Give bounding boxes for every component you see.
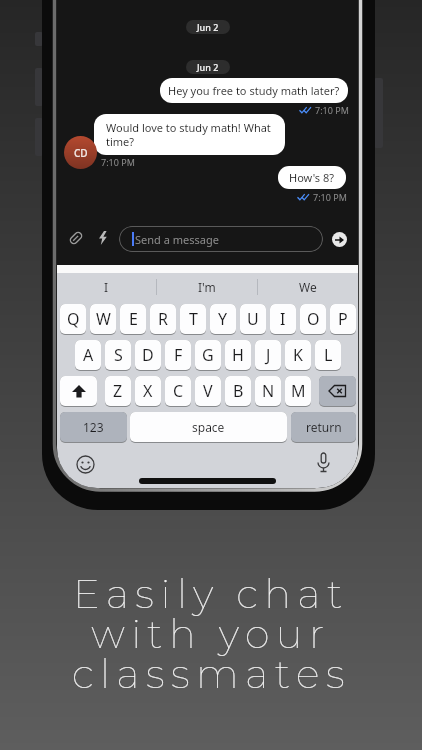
button[interactable]: O <box>300 304 326 334</box>
staticText: 7:10 PM <box>101 156 135 168</box>
staticText: V <box>203 380 213 402</box>
staticText: Send a message <box>135 232 219 247</box>
staticText: Jun 2 <box>197 21 219 33</box>
button[interactable]: D <box>135 340 161 370</box>
staticText: U <box>247 308 259 330</box>
button[interactable]: P <box>330 304 356 334</box>
staticText: M <box>291 380 306 402</box>
button[interactable] <box>98 231 108 245</box>
button[interactable]: X <box>135 376 161 406</box>
staticText: I <box>104 279 109 295</box>
button[interactable]: I <box>57 273 156 301</box>
staticText: E <box>129 308 138 330</box>
staticText: P <box>338 308 348 330</box>
button[interactable] <box>319 376 356 406</box>
button[interactable]: W <box>90 304 116 334</box>
staticText: Easily chat <box>73 569 349 618</box>
button[interactable]: U <box>240 304 266 334</box>
button[interactable]: Z <box>105 376 131 406</box>
staticText: We <box>299 279 317 295</box>
button[interactable]: F <box>165 340 191 370</box>
staticText: I'm <box>198 279 216 295</box>
button[interactable]: T <box>180 304 206 334</box>
staticText: Y <box>218 308 228 330</box>
staticText: A <box>83 344 94 366</box>
staticText: F <box>174 344 183 366</box>
staticText: S <box>114 344 123 366</box>
button[interactable]: E <box>120 304 146 334</box>
button[interactable]: I <box>270 304 296 334</box>
button[interactable]: S <box>105 340 131 370</box>
staticText: Jun 2 <box>197 61 219 73</box>
staticText: C <box>173 380 184 402</box>
button[interactable] <box>317 453 330 475</box>
button[interactable]: B <box>225 376 251 406</box>
staticText: W <box>96 308 111 330</box>
button[interactable]: Send a message <box>119 226 323 252</box>
button[interactable]: V <box>195 376 221 406</box>
staticText: T <box>189 308 198 330</box>
staticText: CD <box>74 146 88 160</box>
staticText: Hey you free to study math later? <box>168 83 340 98</box>
staticText: X <box>143 380 153 402</box>
button[interactable] <box>68 230 84 246</box>
staticText: K <box>293 344 303 366</box>
staticText: G <box>202 344 214 366</box>
staticText: Would love to study math! What time? <box>106 120 271 149</box>
button[interactable]: C <box>165 376 191 406</box>
staticText: 7:10 PM <box>313 191 347 203</box>
staticText: space <box>192 419 225 435</box>
staticText: B <box>233 380 244 402</box>
button[interactable]: M <box>285 376 311 406</box>
button[interactable]: We <box>258 273 358 301</box>
button[interactable]: K <box>285 340 311 370</box>
button[interactable] <box>60 376 97 406</box>
button[interactable] <box>332 232 347 247</box>
staticText: Z <box>113 380 123 402</box>
staticText: I <box>280 308 286 330</box>
button[interactable]: J <box>255 340 281 370</box>
button[interactable]: R <box>150 304 176 334</box>
button[interactable]: L <box>315 340 341 370</box>
staticText: with your <box>91 609 331 658</box>
staticText: How's 8? <box>289 170 335 185</box>
button[interactable]: I'm <box>157 273 257 301</box>
button[interactable]: space <box>130 412 287 442</box>
staticText: classmates <box>72 649 351 698</box>
button[interactable]: N <box>255 376 281 406</box>
staticText: J <box>266 344 271 366</box>
button[interactable]: G <box>195 340 221 370</box>
staticText: H <box>232 344 244 366</box>
staticText: return <box>306 419 342 435</box>
staticText: L <box>324 344 333 366</box>
button[interactable]: A <box>75 340 101 370</box>
staticText: Q <box>67 308 80 330</box>
staticText: O <box>307 308 320 330</box>
button[interactable]: 123 <box>60 412 127 442</box>
button[interactable]: return <box>291 412 356 442</box>
button[interactable]: Y <box>210 304 236 334</box>
button[interactable]: Q <box>60 304 86 334</box>
button[interactable]: H <box>225 340 251 370</box>
staticText: D <box>142 344 154 366</box>
staticText: 123 <box>83 419 104 435</box>
button[interactable] <box>76 455 95 474</box>
staticText: N <box>262 380 275 402</box>
staticText: R <box>158 308 168 330</box>
staticText: 7:10 PM <box>315 104 349 116</box>
